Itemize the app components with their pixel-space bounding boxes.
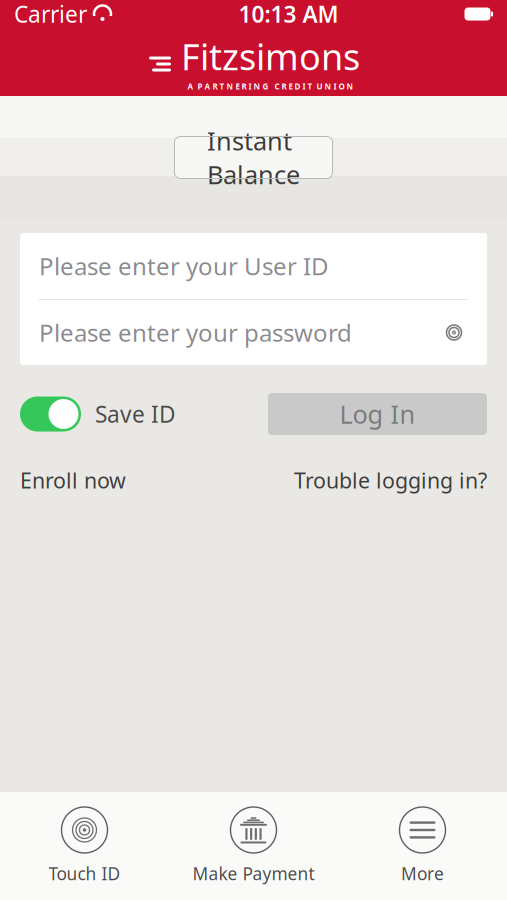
staticText: Instant Balance [207,124,300,191]
button[interactable]: Show password [440,322,468,342]
staticText: Trouble logging in? [294,466,487,494]
staticText: 10:13 AM [238,0,338,29]
button[interactable]: Touch ID [0,792,169,900]
button[interactable]: Instant Balance [174,136,332,178]
button[interactable]: Make Payment [169,792,338,900]
staticText: Touch ID [48,862,120,885]
button[interactable]: Enroll now [20,466,126,494]
button[interactable]: Save ID [20,396,176,431]
staticText: Enroll now [20,466,126,494]
staticText: Carrier [14,0,87,29]
staticText: Log In [339,397,415,431]
button[interactable]: Trouble logging in? [294,466,487,494]
staticText: Please enter your User ID [39,250,329,282]
staticText: Make Payment [192,862,314,885]
staticText: More [401,862,444,885]
staticText: A P A R T N E R I N G C R E D I T U N I … [187,81,353,92]
button[interactable]: Log In [268,393,487,435]
staticText: Save ID [95,399,176,429]
staticText: Please enter your password [39,317,352,348]
staticText: Fitzsimons [181,32,360,80]
button[interactable]: More [338,792,507,900]
